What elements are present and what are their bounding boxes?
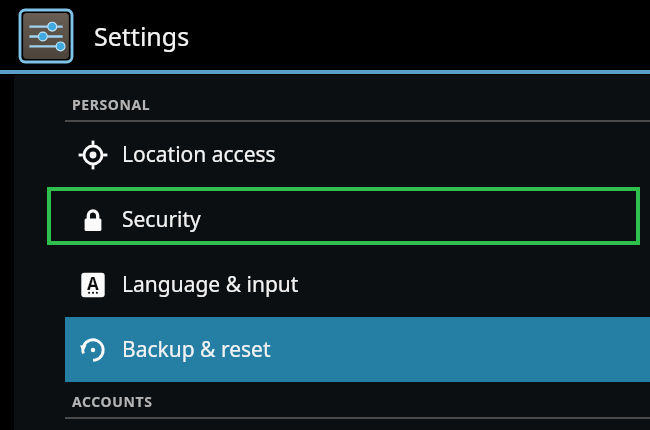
button[interactable]: A bbox=[0, 252, 650, 317]
staticText: Security bbox=[122, 205, 201, 234]
other: Settings bbox=[20, 10, 72, 62]
button[interactable]: Backup & reset bbox=[0, 317, 650, 382]
button[interactable]: Security bbox=[0, 187, 650, 252]
staticText: Location access bbox=[122, 140, 276, 169]
staticText: ACCOUNTS bbox=[72, 392, 153, 411]
staticText: Backup & reset bbox=[122, 335, 271, 364]
button[interactable]: Location access bbox=[0, 122, 650, 187]
button[interactable]: Settings bbox=[0, 0, 650, 71]
staticText: Settings bbox=[94, 19, 190, 53]
staticText: A bbox=[87, 272, 99, 295]
staticText: Language & input bbox=[122, 270, 299, 299]
staticText: PERSONAL bbox=[72, 95, 151, 114]
